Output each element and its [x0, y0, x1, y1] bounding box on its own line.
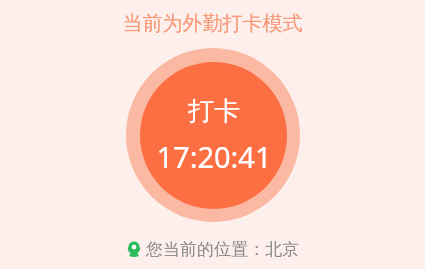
staticText: 您当前的位置：北京: [146, 239, 299, 260]
other: Location: [127, 241, 141, 258]
button[interactable]: Location: [0, 239, 425, 260]
staticText: 当前为外勤打卡模式: [0, 11, 425, 36]
staticText: 17:20:41: [156, 137, 272, 176]
staticText: 打卡: [188, 95, 240, 128]
button[interactable]: 打卡: [126, 48, 300, 222]
